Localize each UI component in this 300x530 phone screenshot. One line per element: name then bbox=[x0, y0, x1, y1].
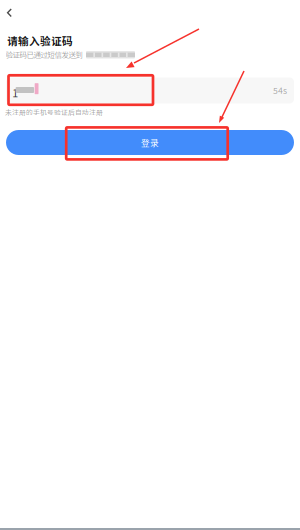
button[interactable]: Back bbox=[0, 0, 26, 26]
staticText: 1 bbox=[12, 85, 18, 100]
button[interactable]: 登录 bbox=[6, 130, 294, 155]
staticText: 登录 bbox=[141, 136, 159, 149]
staticText: 验证码已通过短信发送到 bbox=[5, 49, 82, 60]
staticText: 54s bbox=[273, 84, 287, 96]
staticText: 未注册的手机号验证后自动注册 bbox=[5, 107, 103, 117]
staticText: 请输入验证码 bbox=[7, 33, 73, 48]
